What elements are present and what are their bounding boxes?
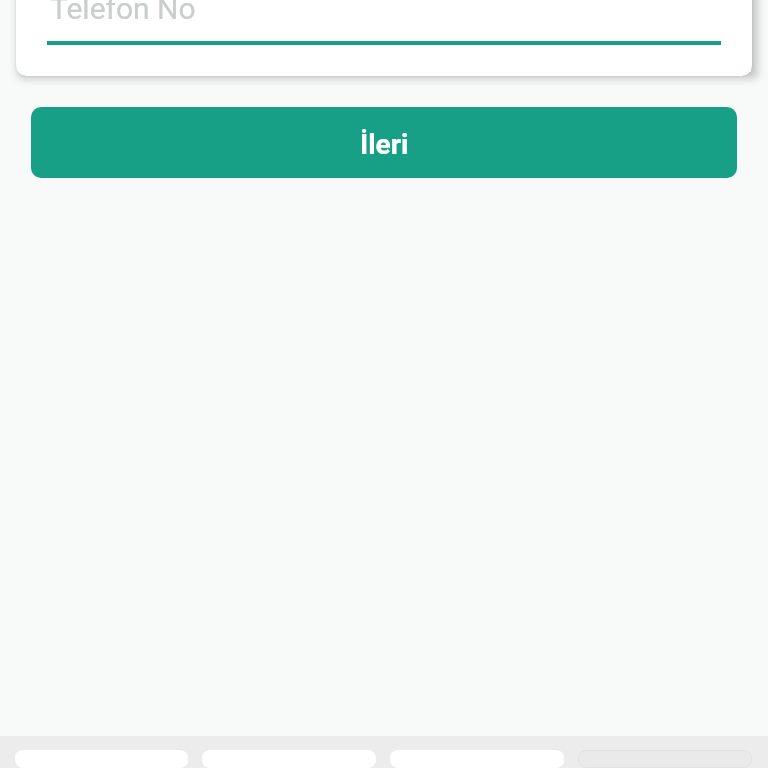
button[interactable]: Telefon No bbox=[47, 0, 721, 45]
staticText: İleri bbox=[360, 128, 409, 161]
button[interactable]: İleri bbox=[31, 107, 737, 178]
staticText: Telefon No bbox=[50, 0, 196, 26]
